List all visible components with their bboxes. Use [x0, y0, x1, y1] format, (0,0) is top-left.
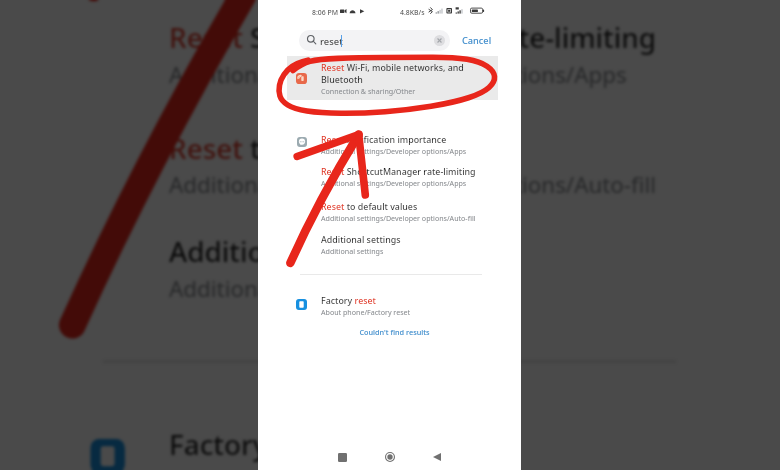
- staticText: Additional settings/Developer options/Ap…: [169, 58, 629, 89]
- button[interactable]: Recents: [331, 446, 353, 468]
- staticText: Additional settings/Developer options/Au…: [169, 168, 657, 199]
- staticText: Additional settings: [169, 234, 421, 272]
- button[interactable]: Couldn't find results: [358, 326, 430, 337]
- button[interactable]: [287, 160, 498, 191]
- staticText: Additional settings: [169, 272, 368, 303]
- staticText: 4.8KB/s: [400, 8, 425, 17]
- button[interactable]: [287, 195, 498, 226]
- staticText: Factory reset: [321, 295, 376, 307]
- button[interactable]: [287, 288, 498, 319]
- staticText: reset: [320, 35, 343, 48]
- button[interactable]: [62, 404, 727, 470]
- staticText: Additional settings: [321, 246, 384, 256]
- staticText: Cancel: [462, 34, 492, 47]
- staticText: Reset to default values: [321, 201, 418, 213]
- button[interactable]: reset: [299, 30, 450, 51]
- button[interactable]: Back: [426, 446, 448, 468]
- staticText: Additional settings/Developer options/Au…: [321, 213, 476, 223]
- button[interactable]: Clear search: [434, 35, 445, 46]
- staticText: Reset ShortcutManager rate-limiting: [169, 20, 657, 58]
- button[interactable]: [62, 0, 727, 1]
- staticText: Additional settings/Developer options/Ap…: [321, 146, 467, 156]
- staticText: Additional settings: [321, 234, 401, 246]
- button[interactable]: [62, 1, 727, 99]
- staticText: Reset to default values: [169, 130, 475, 168]
- button[interactable]: [287, 228, 498, 259]
- staticText: Reset Wi-Fi, mobile networks, and Blueto…: [321, 62, 464, 85]
- staticText: Reset ShortcutManager rate-limiting: [321, 166, 476, 178]
- staticText: About phone/Factory reset: [321, 307, 411, 317]
- staticText: About phone/Factory reset: [169, 464, 453, 470]
- staticText: Factory reset: [169, 426, 342, 464]
- button[interactable]: [287, 129, 498, 160]
- staticText: Additional settings/Developer options/Ap…: [321, 178, 467, 188]
- staticText: Couldn't find results: [359, 327, 430, 337]
- button[interactable]: [287, 56, 498, 100]
- staticText: Connection & sharing/Other: [321, 86, 416, 96]
- staticText: 8:06 PM: [312, 8, 339, 17]
- button[interactable]: [62, 215, 727, 313]
- button[interactable]: Home: [379, 446, 401, 468]
- button[interactable]: Cancel: [456, 30, 498, 50]
- staticText: Reset notification importance: [321, 134, 447, 146]
- button[interactable]: [62, 111, 727, 209]
